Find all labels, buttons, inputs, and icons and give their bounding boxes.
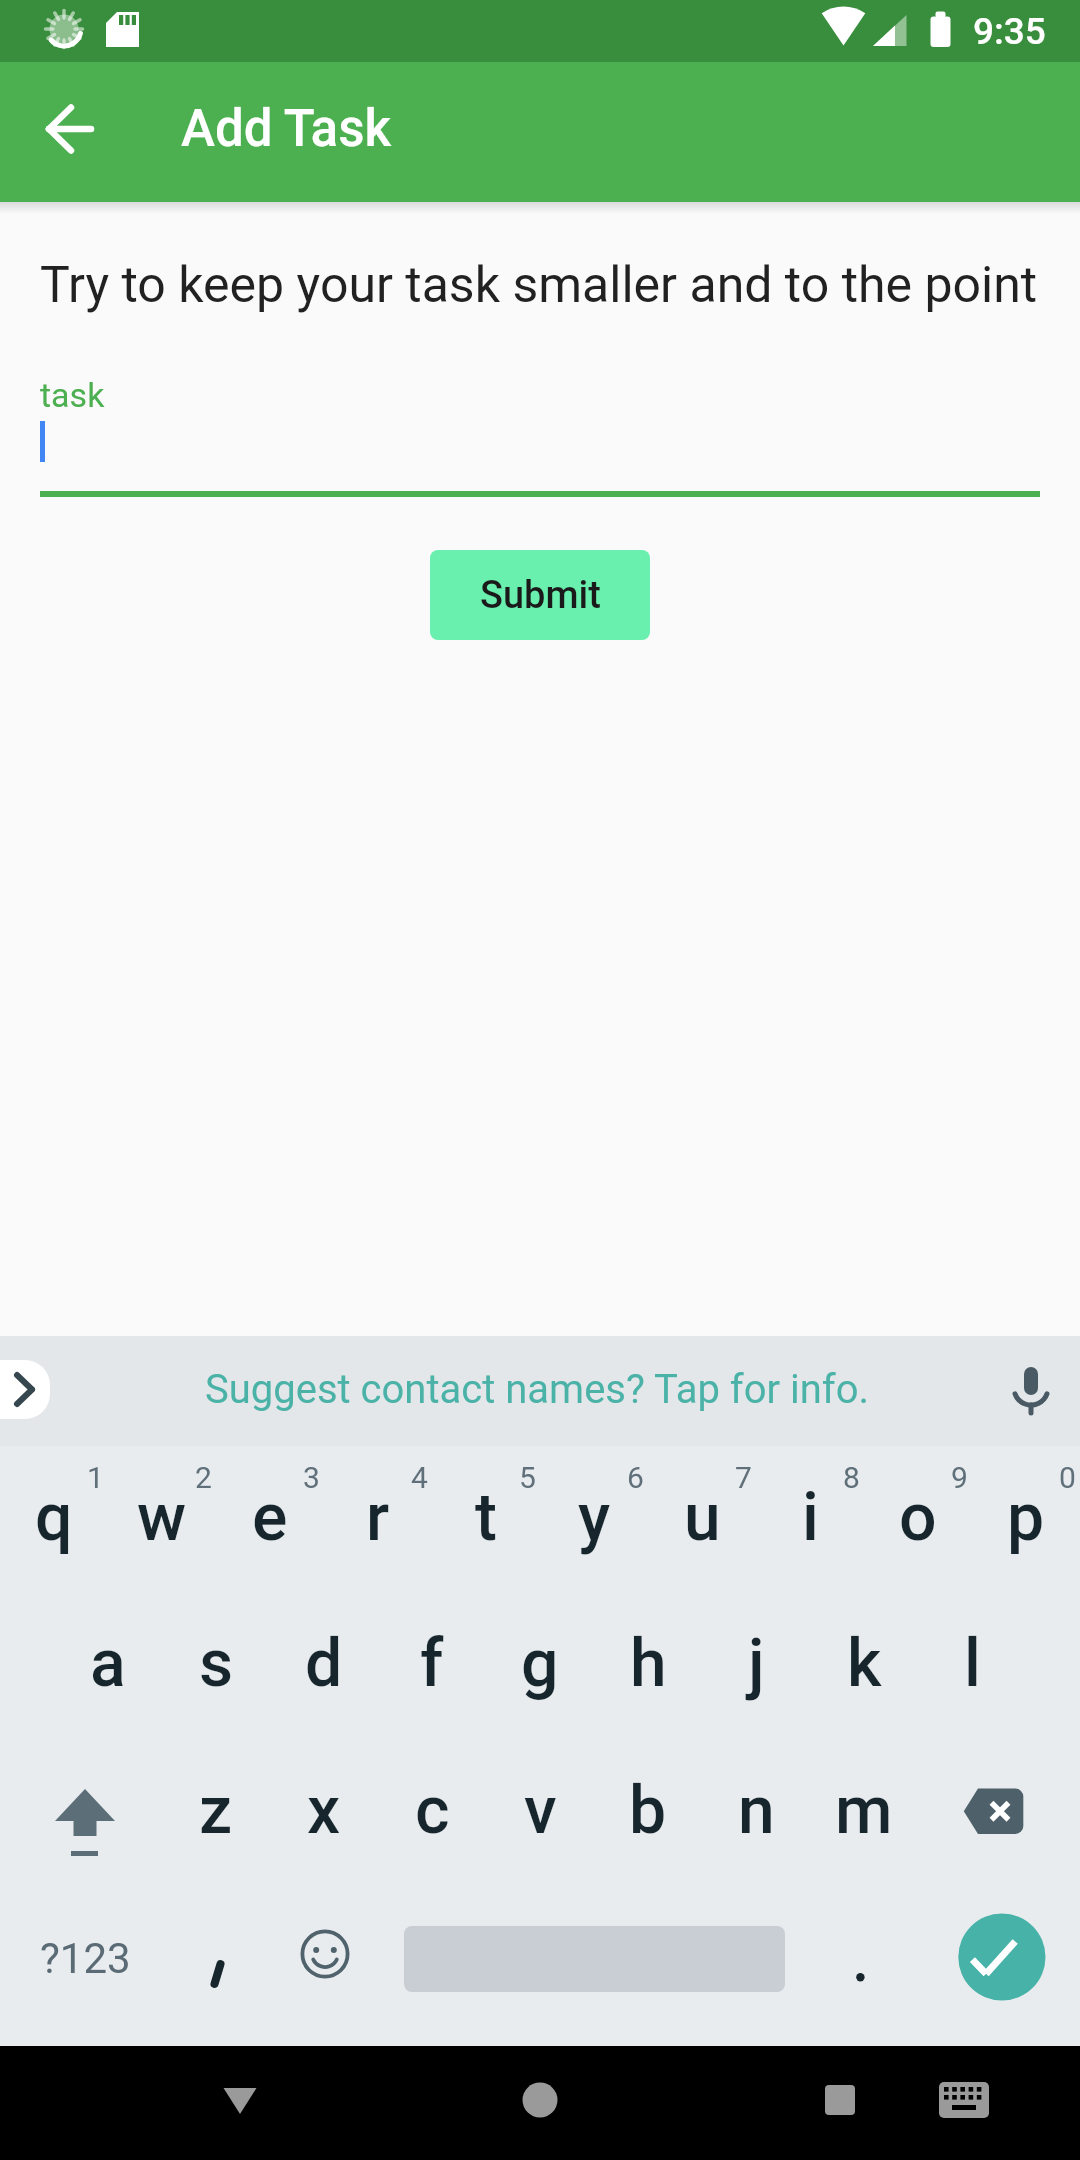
staticText: 2: [195, 1460, 212, 1495]
staticText: 5: [519, 1460, 536, 1495]
staticText: 7: [735, 1460, 752, 1495]
staticText: 0: [1059, 1460, 1076, 1495]
staticText: 4: [411, 1460, 428, 1495]
button[interactable]: [378, 1885, 810, 2032]
button[interactable]: [270, 1885, 378, 2032]
button[interactable]: task: [0, 362, 1080, 502]
staticText: p: [1007, 1479, 1045, 1556]
staticText: j: [748, 1625, 765, 1702]
staticText: o: [899, 1479, 937, 1556]
button[interactable]: [918, 1885, 1080, 2032]
button[interactable]: [914, 2050, 1014, 2150]
button[interactable]: w: [108, 1446, 216, 1592]
staticText: u: [684, 1479, 721, 1556]
button[interactable]: q: [0, 1446, 108, 1592]
button[interactable]: j: [702, 1592, 810, 1739]
staticText: s: [199, 1625, 234, 1702]
staticText: 1: [87, 1460, 104, 1495]
staticText: d: [305, 1625, 343, 1702]
staticText: i: [802, 1479, 819, 1556]
button[interactable]: [1000, 1359, 1062, 1421]
button[interactable]: [490, 2050, 590, 2150]
staticText: Add Task: [181, 99, 392, 159]
button[interactable]: n: [702, 1739, 810, 1885]
button[interactable]: r: [324, 1446, 432, 1592]
button[interactable]: [0, 1360, 50, 1419]
button[interactable]: [162, 1885, 270, 2032]
staticText: n: [738, 1772, 775, 1849]
staticText: l: [964, 1625, 981, 1702]
staticText: x: [307, 1772, 341, 1849]
button[interactable]: d: [270, 1592, 378, 1739]
staticText: t: [475, 1479, 497, 1556]
button[interactable]: [810, 1885, 918, 2032]
button[interactable]: z: [162, 1739, 270, 1885]
staticText: ?123: [40, 1934, 131, 1983]
staticText: 3: [303, 1460, 320, 1495]
button[interactable]: o: [864, 1446, 972, 1592]
button[interactable]: [190, 2050, 290, 2150]
staticText: Try to keep your task smaller and to the…: [40, 256, 1038, 315]
button[interactable]: a: [54, 1592, 162, 1739]
staticText: Submit: [480, 573, 601, 618]
button[interactable]: f: [378, 1592, 486, 1739]
staticText: c: [415, 1772, 450, 1849]
button[interactable]: [790, 2050, 890, 2150]
button[interactable]: ?123: [0, 1885, 162, 2032]
button[interactable]: Suggest contact names? Tap for info.: [205, 1366, 870, 1413]
staticText: g: [521, 1625, 559, 1702]
button[interactable]: [918, 1739, 1080, 1885]
button[interactable]: s: [162, 1592, 270, 1739]
button[interactable]: x: [270, 1739, 378, 1885]
staticText: m: [835, 1772, 893, 1849]
button[interactable]: Submit: [430, 550, 650, 640]
button[interactable]: m: [810, 1739, 918, 1885]
button[interactable]: t: [432, 1446, 540, 1592]
button[interactable]: y: [540, 1446, 648, 1592]
staticText: f: [420, 1625, 444, 1702]
staticText: z: [199, 1772, 233, 1849]
staticText: h: [630, 1625, 667, 1702]
staticText: y: [578, 1479, 611, 1556]
staticText: task: [40, 375, 105, 415]
staticText: r: [366, 1479, 390, 1556]
button[interactable]: u: [648, 1446, 756, 1592]
button[interactable]: b: [594, 1739, 702, 1885]
staticText: 6: [627, 1460, 644, 1495]
button[interactable]: v: [486, 1739, 594, 1885]
button[interactable]: [0, 62, 112, 202]
staticText: e: [252, 1479, 288, 1556]
button[interactable]: [0, 1739, 162, 1885]
button[interactable]: g: [486, 1592, 594, 1739]
staticText: a: [90, 1625, 126, 1702]
staticText: 8: [843, 1460, 860, 1495]
button[interactable]: e: [216, 1446, 324, 1592]
button[interactable]: c: [378, 1739, 486, 1885]
staticText: 9: [951, 1460, 968, 1495]
staticText: b: [629, 1772, 667, 1849]
staticText: w: [137, 1479, 187, 1556]
staticText: q: [35, 1479, 73, 1556]
staticText: k: [847, 1625, 882, 1702]
button[interactable]: l: [918, 1592, 1026, 1739]
button[interactable]: h: [594, 1592, 702, 1739]
button[interactable]: k: [810, 1592, 918, 1739]
staticText: 9:35: [973, 10, 1046, 53]
button[interactable]: p: [972, 1446, 1080, 1592]
button[interactable]: i: [756, 1446, 864, 1592]
staticText: v: [524, 1772, 557, 1849]
